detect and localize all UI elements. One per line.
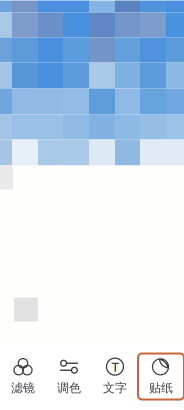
button[interactable]: T	[92, 352, 138, 400]
button[interactable]: 贴纸	[138, 352, 184, 400]
staticText: 调色	[57, 381, 81, 395]
staticText: T	[111, 358, 118, 375]
button[interactable]: 滤镜	[0, 352, 46, 400]
staticText: 贴纸	[149, 381, 173, 395]
staticText: 文字	[103, 381, 127, 395]
staticText: 滤镜	[11, 381, 35, 395]
button[interactable]: 调色	[46, 352, 92, 400]
